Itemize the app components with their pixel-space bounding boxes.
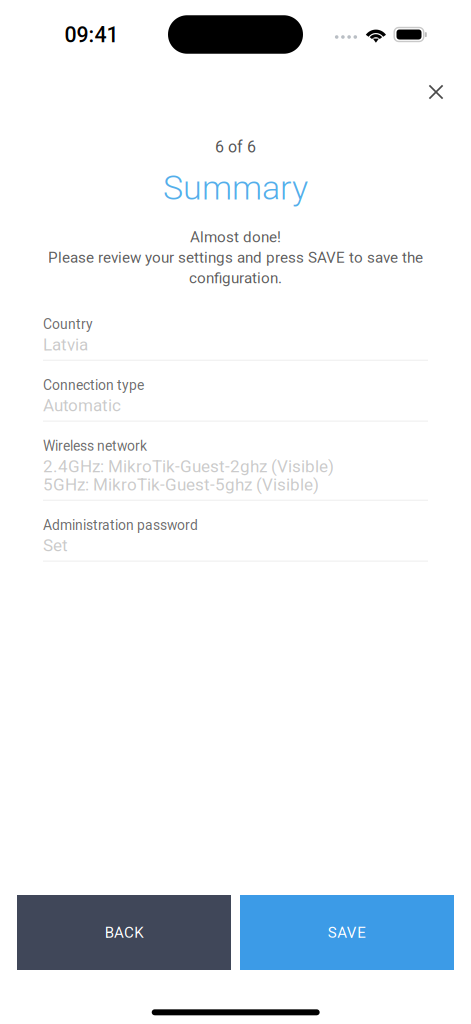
staticText: Latvia [43, 335, 88, 355]
staticText: Country [43, 316, 93, 332]
staticText: Automatic [43, 395, 121, 415]
button[interactable]: SAVE [240, 895, 454, 970]
staticText: Administration password [43, 517, 198, 533]
staticText: Wireless network [43, 438, 147, 454]
staticText: 6 of 6 [215, 138, 256, 156]
button[interactable]: BACK [17, 895, 231, 970]
staticText: Set [43, 535, 68, 555]
staticText: 5GHz: MikroTik-Guest-5ghz (Visible) [43, 475, 319, 495]
staticText: SAVE [328, 924, 366, 941]
staticText: configuration. [189, 269, 282, 287]
staticText: Please review your settings and press SA… [48, 249, 423, 266]
staticText: Almost done! [190, 228, 281, 246]
button[interactable]: Close [414, 70, 457, 113]
staticText: Connection type [43, 377, 144, 393]
staticText: 09:41 [64, 22, 118, 47]
staticText: 2.4GHz: MikroTik-Guest-2ghz (Visible) [43, 456, 334, 476]
staticText: BACK [105, 924, 143, 941]
staticText: Summary [163, 168, 308, 208]
